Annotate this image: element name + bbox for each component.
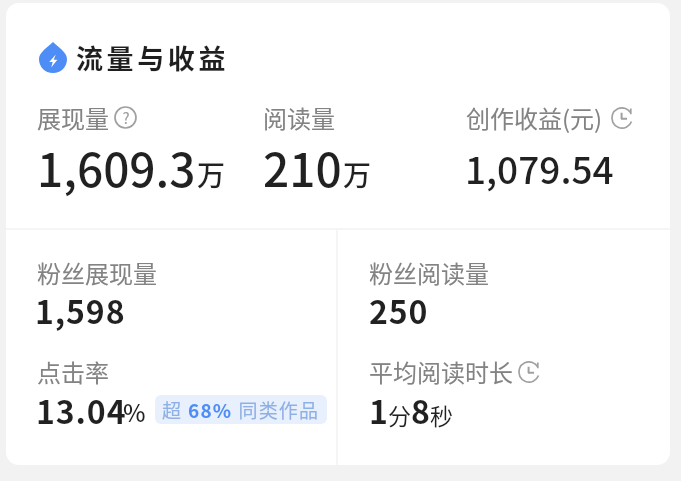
button[interactable]: 210: [263, 134, 372, 201]
staticText: 点击率: [37, 354, 109, 389]
button[interactable]: 创作收益(元): [466, 100, 633, 135]
button[interactable]: Help: [114, 106, 137, 129]
staticText: 平均阅读时长: [369, 354, 513, 389]
button[interactable]: 1,598: [35, 287, 126, 333]
staticText: ?: [122, 107, 130, 129]
staticText: 13.04: [36, 387, 127, 433]
staticText: 秒: [430, 398, 453, 431]
staticText: 万: [343, 154, 372, 195]
other: History: [611, 107, 633, 129]
staticText: 210: [263, 134, 342, 201]
staticText: 68%: [188, 396, 233, 424]
staticText: 展现量: [37, 100, 109, 135]
button[interactable]: 250: [369, 287, 429, 333]
button[interactable]: 点击率: [37, 354, 109, 389]
button[interactable]: 1,079.54: [465, 141, 614, 195]
staticText: 创作收益(元): [466, 100, 603, 135]
staticText: 1: [369, 387, 388, 433]
other: History: [518, 361, 540, 383]
staticText: 1,609.3: [37, 134, 196, 201]
button[interactable]: 13.04: [36, 387, 150, 433]
staticText: 粉丝阅读量: [369, 255, 489, 290]
staticText: 8: [411, 387, 430, 433]
button[interactable]: 阅读量: [263, 100, 335, 135]
button[interactable]: 展现量: [37, 100, 136, 135]
button[interactable]: 1,609.3: [37, 134, 226, 201]
button[interactable]: 粉丝展现量: [37, 255, 157, 290]
button[interactable]: 粉丝阅读量: [369, 255, 489, 290]
staticText: 分: [388, 398, 411, 431]
staticText: 粉丝展现量: [37, 255, 157, 290]
staticText: %: [123, 394, 146, 429]
staticText: 超: [162, 396, 188, 424]
staticText: 1,598: [35, 287, 126, 333]
button[interactable]: 平均阅读时长: [369, 354, 540, 389]
staticText: 1,079.54: [465, 141, 614, 195]
button[interactable]: 流量与收益: [39, 38, 229, 77]
staticText: 250: [369, 287, 429, 333]
staticText: 流量与收益: [76, 38, 229, 77]
staticText: 阅读量: [263, 100, 335, 135]
button[interactable]: 1: [369, 387, 453, 433]
staticText: 万: [197, 154, 226, 195]
button[interactable]: 超: [155, 395, 327, 424]
staticText: 同类作品: [233, 396, 320, 424]
